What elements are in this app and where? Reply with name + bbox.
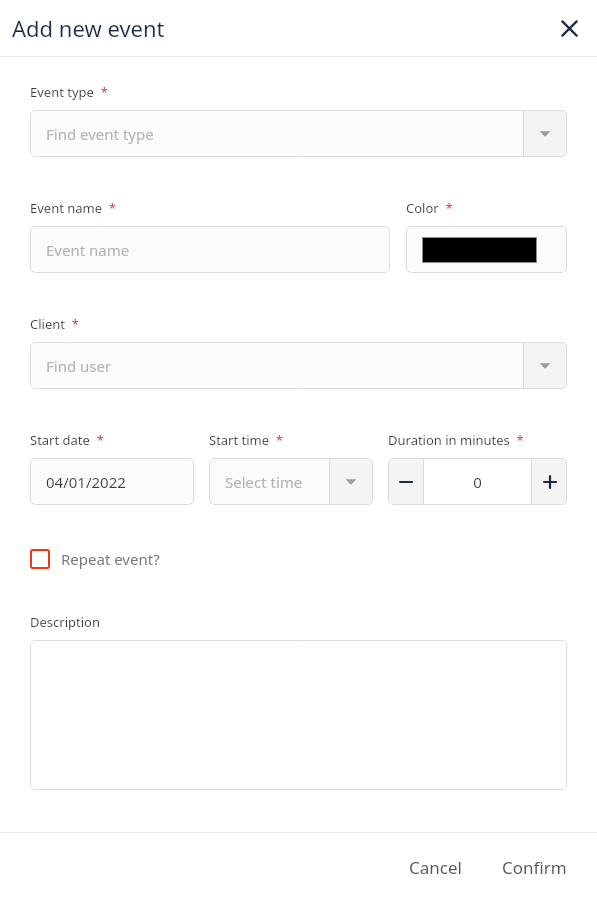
staticText: Event type * [30, 83, 108, 101]
staticText: Add new event [12, 13, 165, 43]
button[interactable]: Find event type [30, 110, 567, 157]
button[interactable]: Find user [30, 342, 567, 389]
button[interactable]: Decrease duration [388, 458, 423, 505]
button[interactable]: Close [551, 10, 587, 46]
staticText: Color * [406, 199, 453, 217]
staticText: Description [30, 613, 100, 631]
staticText: Confirm [502, 856, 567, 879]
button[interactable]: Increase duration [532, 458, 567, 505]
staticText: Start date * [30, 431, 104, 449]
staticText: Duration in minutes * [388, 431, 524, 449]
button[interactable]: Confirm [488, 846, 581, 889]
staticText: 0 [473, 472, 482, 492]
staticText: Repeat event? [61, 549, 160, 569]
staticText: Client * [30, 315, 79, 333]
staticText: Cancel [409, 856, 462, 879]
staticText: 04/01/2022 [46, 472, 126, 492]
staticText: Select time [225, 472, 303, 492]
staticText: Start time * [209, 431, 284, 449]
staticText: Find event type [46, 124, 154, 144]
button[interactable]: Select time [209, 458, 373, 505]
button[interactable]: 04/01/2022 [30, 458, 194, 505]
button[interactable]: Repeat event? [30, 549, 160, 569]
button[interactable]: Cancel [395, 846, 476, 889]
staticText: Event name * [30, 199, 117, 217]
staticText: Find user [46, 356, 112, 376]
button[interactable]: Pick color [406, 226, 567, 273]
button[interactable]: Description [30, 640, 567, 790]
staticText: Event name [46, 240, 130, 260]
button[interactable]: Event name [30, 226, 390, 273]
